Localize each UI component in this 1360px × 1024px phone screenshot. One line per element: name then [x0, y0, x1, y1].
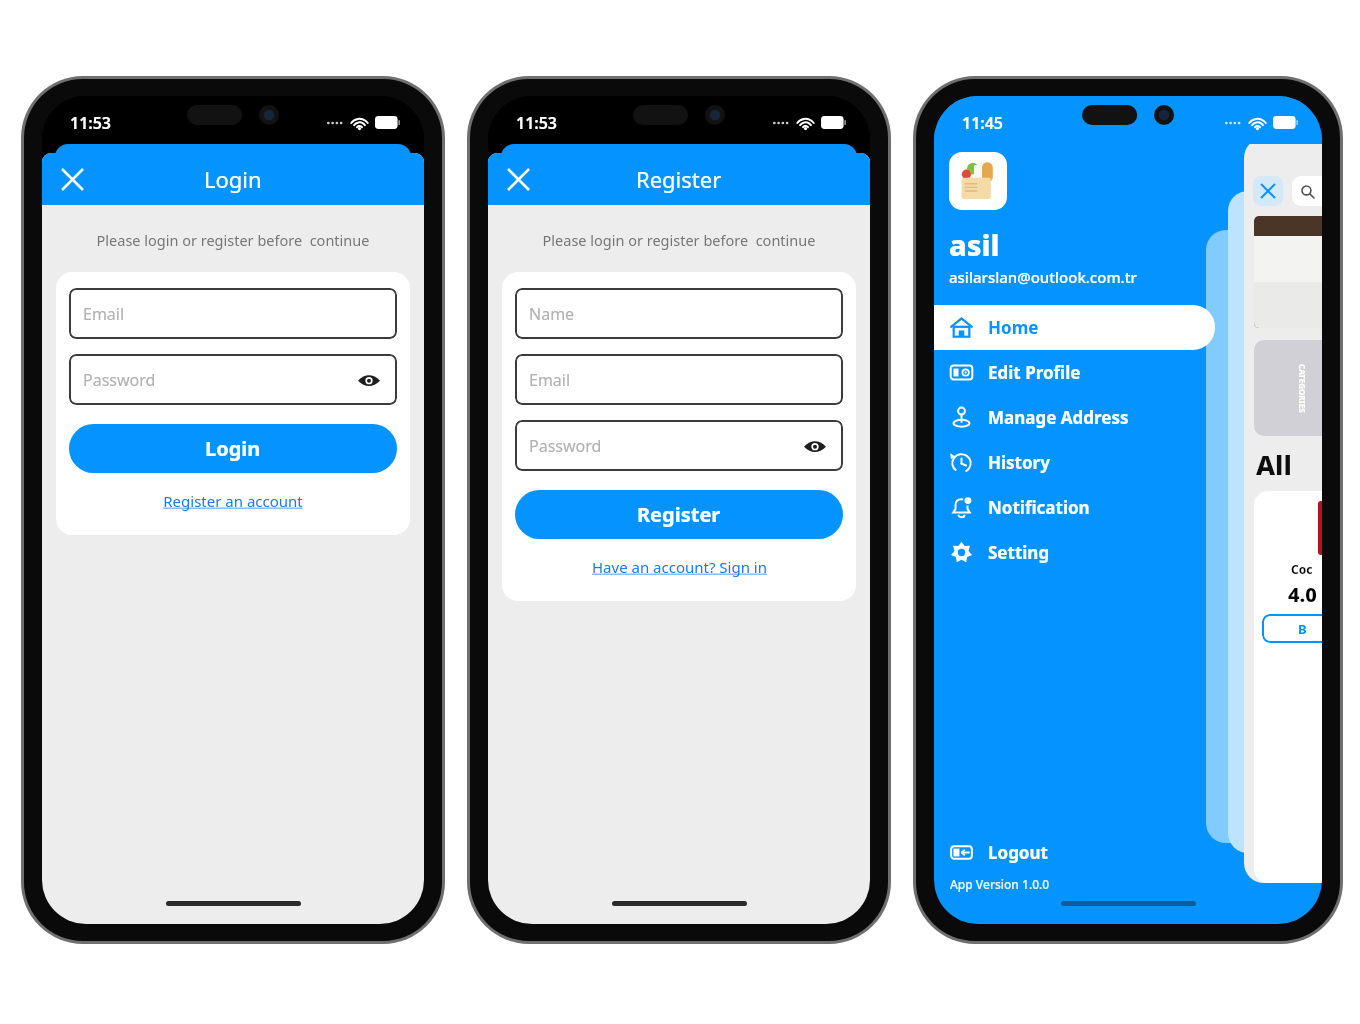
button[interactable]: Close — [51, 158, 93, 200]
button[interactable]: Home — [934, 305, 1215, 350]
button[interactable]: Have an account? Sign in — [515, 552, 843, 582]
staticText: Email — [83, 303, 125, 325]
staticText: Have an account? Sign in — [592, 557, 767, 577]
button[interactable]: Name — [515, 288, 843, 339]
staticText: Login — [204, 164, 262, 194]
button[interactable]: Email — [515, 354, 843, 405]
staticText: 11:53 — [516, 112, 558, 134]
staticText: History — [988, 451, 1050, 474]
staticText: Notification — [988, 496, 1090, 519]
button[interactable]: B — [1262, 614, 1322, 643]
staticText: Setting — [988, 541, 1050, 564]
staticText: Password — [529, 435, 602, 457]
staticText: B — [1298, 620, 1307, 638]
button[interactable]: Close — [497, 158, 539, 200]
staticText: Email — [529, 369, 571, 391]
staticText: Edit Profile — [988, 361, 1081, 384]
button[interactable]: Email — [69, 288, 397, 339]
staticText: Please login or register before continue — [42, 230, 424, 250]
staticText: Login — [205, 435, 261, 462]
staticText: App Version 1.0.0 — [950, 876, 1050, 892]
button[interactable]: Edit Profile — [934, 350, 1215, 395]
button[interactable]: Show password — [355, 366, 383, 394]
button[interactable]: Manage Address — [934, 395, 1215, 440]
staticText: asilarslan@outlook.com.tr — [949, 267, 1137, 287]
button[interactable]: History — [934, 440, 1215, 485]
button[interactable]: Search — [1292, 176, 1322, 206]
staticText: All — [1256, 446, 1292, 483]
button[interactable]: Close — [1253, 176, 1283, 206]
button[interactable]: Show password — [801, 432, 829, 460]
staticText: Home — [988, 316, 1039, 339]
button[interactable]: Register an account — [69, 486, 397, 516]
button[interactable]: Password — [69, 354, 397, 405]
staticText: asil — [949, 225, 1000, 264]
button[interactable]: Password — [515, 420, 843, 471]
staticText: Register — [636, 164, 722, 194]
button[interactable]: Logout — [934, 830, 1215, 875]
staticText: Password — [83, 369, 156, 391]
staticText: Logout — [988, 841, 1048, 864]
staticText: CATEGORIES — [1297, 364, 1308, 413]
staticText: 11:53 — [70, 112, 112, 134]
staticText: Name — [529, 303, 575, 325]
staticText: Register — [637, 501, 721, 528]
button[interactable]: Setting — [934, 530, 1215, 575]
staticText: Coc — [1291, 561, 1313, 577]
staticText: 11:45 — [962, 112, 1004, 134]
button[interactable]: Notification — [934, 485, 1215, 530]
staticText: Register an account — [163, 491, 303, 511]
button[interactable]: Register — [515, 490, 843, 539]
staticText: Please login or register before continue — [488, 230, 870, 250]
staticText: 4.0 — [1288, 581, 1317, 608]
button[interactable]: Login — [69, 424, 397, 473]
staticText: Manage Address — [988, 406, 1129, 429]
